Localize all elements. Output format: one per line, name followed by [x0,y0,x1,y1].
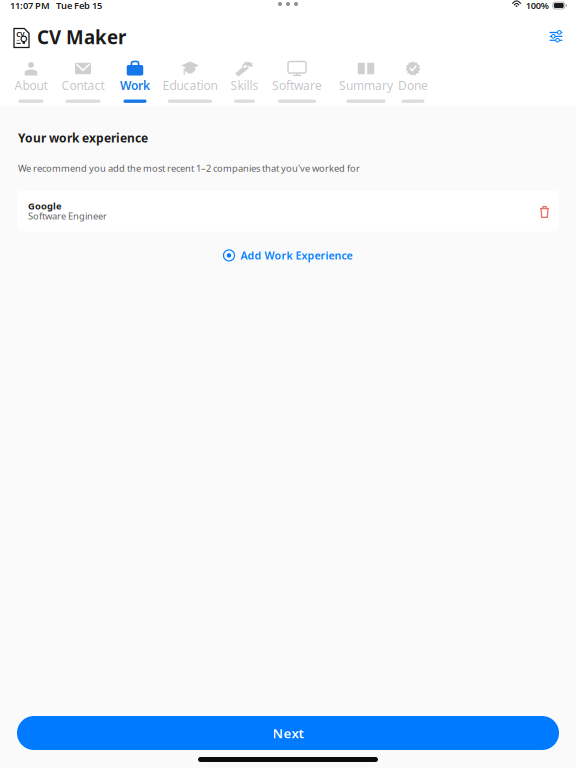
staticText: We recommend you add the most recent 1–2… [18,162,360,174]
button[interactable]: Add Work Experience [213,243,362,267]
staticText: Tue Feb 15 [56,0,102,12]
button[interactable]: Work [110,52,160,104]
staticText: Contact [61,77,104,93]
button[interactable]: Education [160,52,220,104]
button[interactable]: Next [0,716,576,750]
staticText: Software Engineer [28,210,107,222]
staticText: Work [120,77,150,93]
button[interactable]: Done [407,52,419,104]
staticText: About [14,77,47,93]
button[interactable]: Google [0,190,576,231]
staticText: 11:07 PM [10,0,50,12]
staticText: Skills [230,77,258,93]
button[interactable]: Settings [537,18,575,50]
staticText: 100% [526,0,549,12]
button[interactable]: Contact [56,52,110,104]
staticText: Google [28,200,62,212]
button[interactable]: Summary [325,52,407,104]
staticText: Summary [339,77,393,93]
staticText: Next [272,724,303,742]
staticText: Software [272,77,322,93]
staticText: Your work experience [18,130,148,146]
button[interactable]: Software [269,52,325,104]
staticText: Add Work Experience [240,248,352,262]
staticText: Education [162,77,217,93]
staticText: CV Maker [37,25,126,49]
staticText: Done [398,77,428,93]
button[interactable]: About [6,52,56,104]
staticText: CV [16,30,24,39]
button[interactable]: Skills [220,52,269,104]
